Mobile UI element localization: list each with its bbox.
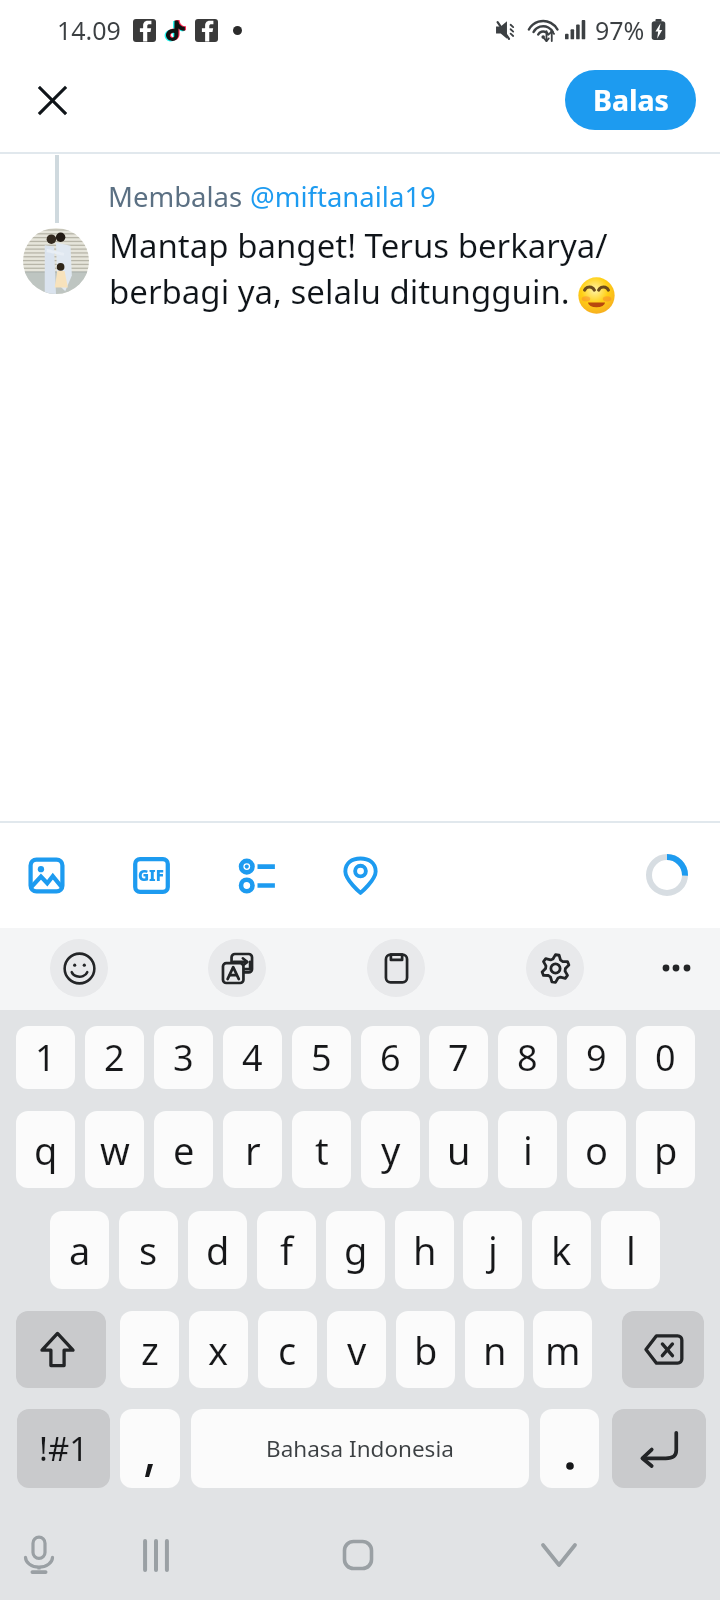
button[interactable]: 3	[154, 1026, 213, 1089]
staticText: r	[245, 1124, 261, 1176]
staticText: l	[626, 1224, 636, 1276]
button[interactable]: p	[636, 1111, 695, 1188]
button[interactable]: y	[361, 1111, 420, 1188]
staticText: 6	[380, 1033, 401, 1082]
staticText: 0	[655, 1033, 676, 1082]
staticText: 4	[242, 1033, 263, 1082]
button[interactable]: w	[85, 1111, 144, 1188]
staticText: Bahasa Indonesia	[266, 1433, 454, 1464]
button[interactable]: Add GIF	[124, 848, 178, 902]
staticText: h	[413, 1224, 437, 1276]
button[interactable]: v	[327, 1311, 386, 1388]
button[interactable]: Hide keyboard	[525, 1521, 593, 1589]
button[interactable]: Add location	[333, 848, 387, 902]
button[interactable]: u	[429, 1111, 488, 1188]
button[interactable]: z	[120, 1311, 179, 1388]
button[interactable]: 7	[429, 1026, 488, 1089]
button[interactable]: h	[395, 1211, 454, 1289]
button[interactable]: Translate	[208, 939, 266, 997]
staticText: 97%	[595, 13, 645, 47]
button[interactable]: Shift	[16, 1311, 106, 1388]
button[interactable]: 0	[636, 1026, 695, 1089]
staticText: Mantap banget! Terus berkarya/ berbagi y…	[109, 223, 608, 314]
staticText: 9	[586, 1033, 607, 1082]
button[interactable]: Comma	[120, 1409, 180, 1488]
staticText: 5	[311, 1033, 332, 1082]
staticText: s	[139, 1224, 158, 1276]
button[interactable]: Enter	[612, 1409, 706, 1488]
button[interactable]: l	[601, 1211, 660, 1289]
button[interactable]: b	[396, 1311, 455, 1388]
button[interactable]: !#1	[17, 1409, 110, 1488]
button[interactable]: Clipboard	[367, 939, 425, 997]
staticText: Balas	[593, 81, 669, 120]
button[interactable]: 5	[292, 1026, 351, 1089]
staticText: 8	[517, 1033, 538, 1082]
button[interactable]: d	[188, 1211, 247, 1289]
staticText: j	[488, 1224, 498, 1276]
staticText: w	[100, 1124, 130, 1176]
button[interactable]: 8	[498, 1026, 557, 1089]
button[interactable]: Voice input	[5, 1521, 73, 1589]
staticText: i	[523, 1124, 533, 1176]
staticText: e	[173, 1124, 195, 1176]
button[interactable]: Emoji	[50, 939, 108, 997]
button[interactable]: 2	[85, 1026, 144, 1089]
staticText: y	[381, 1124, 401, 1176]
button[interactable]: Add photo	[19, 848, 73, 902]
staticText: p	[654, 1124, 678, 1176]
staticText: b	[414, 1324, 438, 1376]
button[interactable]: m	[533, 1311, 592, 1388]
staticText: !#1	[39, 1426, 89, 1471]
button[interactable]: c	[258, 1311, 317, 1388]
button[interactable]: More options	[648, 938, 708, 998]
staticText: GIF	[138, 865, 164, 885]
button[interactable]: r	[223, 1111, 282, 1188]
button[interactable]: n	[465, 1311, 524, 1388]
staticText: t	[315, 1124, 329, 1176]
button[interactable]: 9	[567, 1026, 626, 1089]
staticText: 14.09	[57, 13, 121, 47]
button[interactable]: j	[463, 1211, 522, 1289]
button[interactable]: Settings	[526, 939, 584, 997]
button[interactable]: o	[567, 1111, 626, 1188]
staticText: 1	[35, 1033, 56, 1082]
button[interactable]: Bahasa Indonesia	[191, 1409, 529, 1488]
button[interactable]: k	[532, 1211, 591, 1289]
button[interactable]: Recents	[122, 1521, 190, 1589]
staticText: k	[551, 1224, 572, 1276]
button[interactable]: Close	[16, 64, 89, 137]
button[interactable]: x	[189, 1311, 248, 1388]
button[interactable]: t	[292, 1111, 351, 1188]
button[interactable]: s	[119, 1211, 178, 1289]
button[interactable]: Period	[540, 1409, 599, 1488]
button[interactable]: Balas	[565, 70, 696, 130]
button[interactable]: i	[498, 1111, 557, 1188]
staticText: 3	[173, 1033, 194, 1082]
staticText: Membalas	[108, 178, 250, 215]
staticText: o	[585, 1124, 608, 1176]
button[interactable]: Add poll	[230, 848, 284, 902]
staticText: 7	[448, 1033, 469, 1082]
staticText: f	[280, 1224, 294, 1276]
staticText: a	[69, 1224, 91, 1276]
button[interactable]: e	[154, 1111, 213, 1188]
button[interactable]: a	[50, 1211, 109, 1289]
staticText: 2	[104, 1033, 125, 1082]
button[interactable]: 6	[361, 1026, 420, 1089]
button[interactable]: f	[257, 1211, 316, 1289]
button[interactable]: g	[326, 1211, 385, 1289]
button[interactable]: q	[16, 1111, 75, 1188]
staticText: m	[545, 1324, 581, 1376]
button[interactable]: 4	[223, 1026, 282, 1089]
button[interactable]: Backspace	[622, 1311, 704, 1388]
button[interactable]: Home	[324, 1521, 392, 1589]
staticText: v	[347, 1324, 367, 1376]
staticText: g	[344, 1224, 368, 1276]
staticText: d	[206, 1224, 230, 1276]
staticText: x	[208, 1324, 229, 1376]
button[interactable]: 1	[16, 1026, 75, 1089]
staticText: u	[447, 1124, 471, 1176]
staticText: @miftanaila19	[250, 178, 436, 215]
staticText: z	[141, 1324, 159, 1376]
